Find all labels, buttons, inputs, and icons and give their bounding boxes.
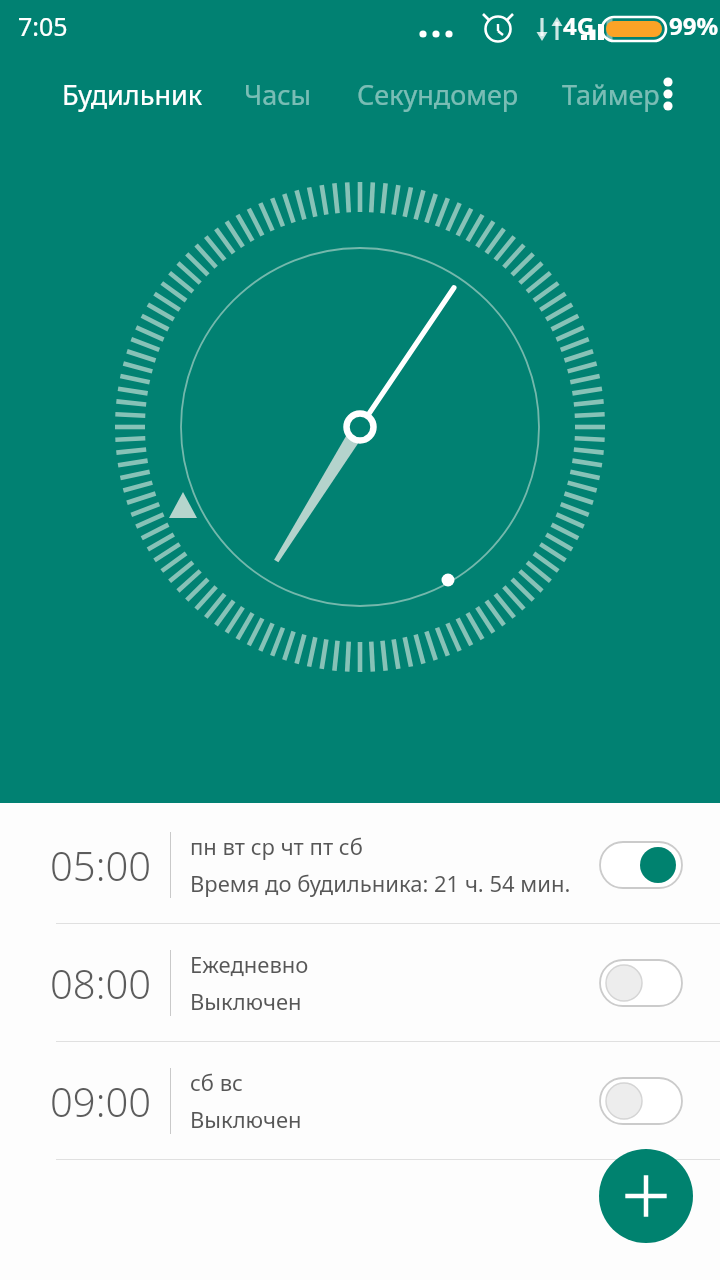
- staticText: пн вт ср чт пт сб: [190, 831, 363, 861]
- button[interactable]: Alarm enabled: [598, 840, 684, 890]
- button[interactable]: Секундомер: [357, 64, 519, 124]
- staticText: сб вс: [190, 1067, 243, 1097]
- staticText: Часы: [244, 76, 311, 113]
- staticText: 4G: [563, 9, 595, 42]
- staticText: Выключен: [190, 986, 302, 1016]
- staticText: 09:00: [50, 1074, 152, 1128]
- staticText: Выключен: [190, 1104, 302, 1134]
- button[interactable]: Таймер: [562, 64, 660, 124]
- button[interactable]: 09:00: [0, 1042, 720, 1159]
- button[interactable]: Alarm disabled: [598, 958, 684, 1008]
- button[interactable]: 05:00: [0, 806, 720, 923]
- staticText: 7:05: [18, 9, 68, 43]
- staticText: 05:00: [50, 838, 152, 892]
- staticText: Ежедневно: [190, 949, 309, 979]
- staticText: Время до будильника: 21 ч. 54 мин.: [190, 868, 571, 898]
- staticText: 99%: [669, 9, 719, 42]
- button[interactable]: Будильник: [62, 64, 203, 124]
- staticText: Будильник: [62, 76, 203, 113]
- staticText: 08:00: [50, 956, 152, 1010]
- button[interactable]: 08:00: [0, 924, 720, 1041]
- staticText: Таймер: [562, 76, 660, 113]
- staticText: Секундомер: [357, 76, 519, 113]
- button[interactable]: Часы: [244, 64, 311, 124]
- button[interactable]: Alarm disabled: [598, 1076, 684, 1126]
- button[interactable]: Add alarm: [599, 1149, 693, 1243]
- button[interactable]: More options: [644, 64, 692, 124]
